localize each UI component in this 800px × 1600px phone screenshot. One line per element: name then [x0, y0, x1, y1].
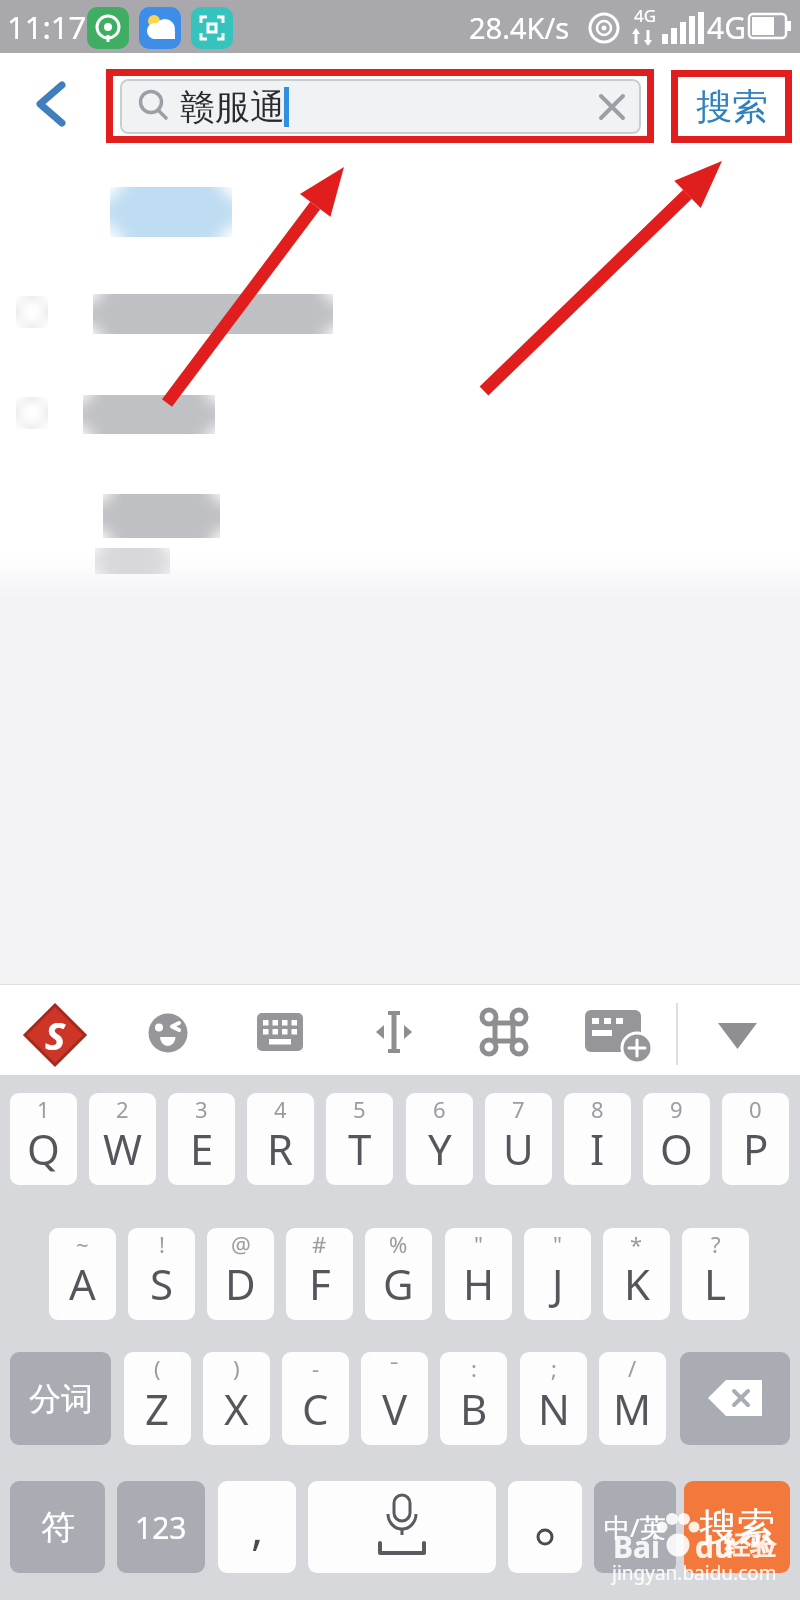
button[interactable]: ?: [682, 1228, 749, 1320]
staticText: ,: [251, 1496, 264, 1559]
button[interactable]: 符: [10, 1481, 105, 1573]
staticText: Bai: [613, 1526, 660, 1567]
staticText: ~: [76, 1229, 89, 1259]
staticText: 符: [41, 1506, 75, 1549]
button[interactable]: [710, 1015, 766, 1057]
button[interactable]: [508, 1481, 582, 1573]
staticText: F: [309, 1255, 331, 1312]
staticText: 5: [353, 1094, 366, 1124]
button[interactable]: 6: [406, 1093, 473, 1185]
button[interactable]: 3: [168, 1093, 235, 1185]
staticText: ˉ: [390, 1353, 399, 1383]
button[interactable]: 中/英: [594, 1481, 676, 1573]
staticText: R: [267, 1120, 294, 1177]
button[interactable]: 2: [89, 1093, 156, 1185]
button[interactable]: 9: [643, 1093, 710, 1185]
staticText: 28.4K/s: [469, 8, 570, 47]
button[interactable]: :: [440, 1352, 507, 1445]
button[interactable]: ,: [218, 1481, 296, 1573]
button[interactable]: !: [128, 1228, 195, 1320]
button[interactable]: ": [445, 1228, 512, 1320]
staticText: 11:17: [7, 6, 87, 48]
button[interactable]: [585, 1008, 655, 1064]
staticText: N: [538, 1380, 570, 1437]
button[interactable]: @: [207, 1228, 274, 1320]
staticText: Y: [428, 1120, 452, 1177]
staticText: 6: [433, 1094, 446, 1124]
staticText: -: [312, 1353, 320, 1383]
staticText: T: [348, 1120, 372, 1177]
button[interactable]: 分词: [10, 1352, 111, 1445]
button[interactable]: 搜索: [671, 70, 792, 143]
staticText: 经验: [724, 1530, 776, 1563]
button[interactable]: ): [203, 1352, 270, 1445]
button[interactable]: ": [524, 1228, 591, 1320]
staticText: ?: [711, 1229, 721, 1259]
staticText: ": [553, 1229, 562, 1259]
staticText: 搜索: [699, 1503, 775, 1551]
button[interactable]: [308, 1481, 496, 1573]
staticText: J: [552, 1255, 564, 1312]
staticText: 赣服通: [180, 85, 285, 129]
staticText: C: [302, 1380, 329, 1437]
button[interactable]: 4: [247, 1093, 314, 1185]
button[interactable]: [680, 1352, 790, 1445]
button[interactable]: [482, 1010, 526, 1054]
staticText: ;: [551, 1353, 557, 1383]
button[interactable]: ˉ: [361, 1352, 428, 1445]
button[interactable]: [146, 1012, 190, 1056]
button[interactable]: 1: [10, 1093, 77, 1185]
button[interactable]: [257, 1013, 303, 1053]
button[interactable]: (: [124, 1352, 191, 1445]
staticText: S: [45, 1009, 66, 1061]
staticText: U: [503, 1120, 534, 1177]
staticText: 4G: [634, 4, 657, 27]
staticText: V: [382, 1380, 408, 1437]
button[interactable]: 123: [117, 1481, 205, 1573]
staticText: (: [154, 1353, 161, 1383]
staticText: M: [613, 1380, 652, 1437]
button[interactable]: [372, 1010, 416, 1054]
staticText: 7: [512, 1094, 525, 1124]
staticText: X: [224, 1380, 249, 1437]
staticText: 8: [591, 1094, 604, 1124]
button[interactable]: 搜索: [684, 1481, 790, 1573]
staticText: @: [231, 1229, 251, 1259]
button[interactable]: [120, 79, 641, 134]
staticText: D: [225, 1255, 256, 1312]
staticText: 4G: [707, 7, 746, 48]
staticText: 3: [195, 1094, 208, 1124]
staticText: W: [103, 1120, 143, 1177]
button[interactable]: /: [599, 1352, 666, 1445]
button[interactable]: ;: [520, 1352, 587, 1445]
staticText: L: [704, 1255, 727, 1312]
staticText: H: [463, 1255, 495, 1312]
staticText: K: [624, 1255, 650, 1312]
staticText: Z: [145, 1380, 170, 1437]
button[interactable]: #: [286, 1228, 353, 1320]
staticText: #: [312, 1229, 327, 1259]
staticText: 123: [135, 1507, 187, 1548]
staticText: G: [383, 1255, 414, 1312]
staticText: 2: [116, 1094, 129, 1124]
staticText: I: [590, 1120, 605, 1177]
button[interactable]: *: [603, 1228, 670, 1320]
staticText: 4: [274, 1094, 287, 1124]
button[interactable]: 8: [564, 1093, 631, 1185]
button[interactable]: 5: [326, 1093, 393, 1185]
button[interactable]: 7: [485, 1093, 552, 1185]
staticText: B: [460, 1380, 488, 1437]
button[interactable]: S: [25, 1005, 85, 1065]
staticText: du: [695, 1526, 734, 1567]
staticText: 0: [749, 1094, 762, 1124]
staticText: S: [150, 1255, 174, 1312]
button[interactable]: 0: [722, 1093, 789, 1185]
staticText: :: [471, 1353, 477, 1383]
staticText: A: [69, 1255, 96, 1312]
button[interactable]: [26, 76, 78, 132]
button[interactable]: -: [282, 1352, 349, 1445]
staticText: 中/英: [604, 1509, 666, 1545]
staticText: P: [743, 1120, 769, 1177]
button[interactable]: ~: [49, 1228, 116, 1320]
button[interactable]: %: [365, 1228, 432, 1320]
